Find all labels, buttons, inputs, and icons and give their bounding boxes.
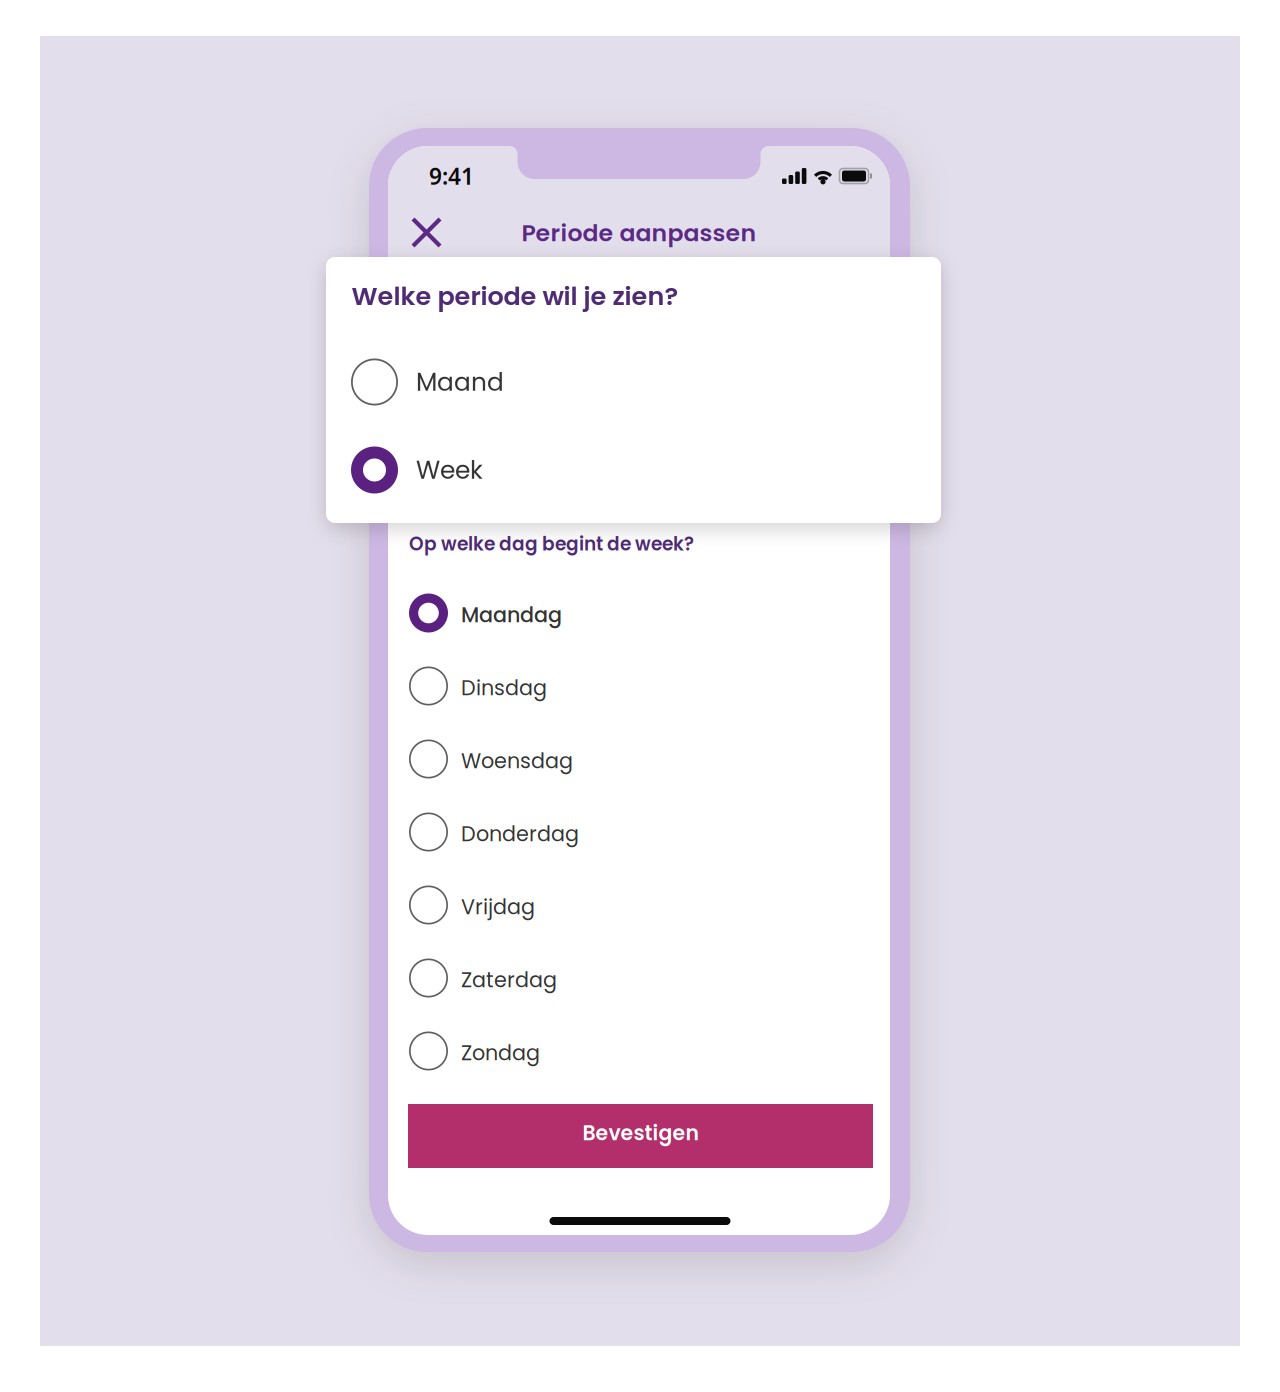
button[interactable]: Sluiten (397, 203, 455, 261)
staticText: Vrijdag (461, 892, 535, 921)
button[interactable]: Woensdag (409, 722, 869, 795)
staticText: 9:41 (429, 161, 474, 191)
staticText: Op welke dag begint de week? (409, 531, 694, 557)
button[interactable]: Bevestigen (408, 1104, 873, 1168)
button[interactable]: Donderdag (409, 795, 869, 868)
staticText: Maandag (461, 600, 562, 629)
staticText: Donderdag (461, 819, 579, 848)
staticText: Zondag (461, 1038, 540, 1067)
staticText: Dinsdag (461, 673, 547, 702)
button[interactable]: Maandag (409, 576, 869, 649)
button[interactable]: Zondag (409, 1014, 869, 1087)
button[interactable]: Maand (351, 338, 916, 426)
button[interactable]: Vrijdag (409, 868, 869, 941)
staticText: Bevestigen (582, 1119, 698, 1147)
button[interactable]: Zaterdag (409, 941, 869, 1014)
staticText: Welke periode wil je zien? (351, 278, 678, 314)
button[interactable]: Week (351, 426, 916, 514)
staticText: Periode aanpassen (521, 216, 756, 249)
staticText: Week (416, 453, 483, 487)
button[interactable]: Dinsdag (409, 649, 869, 722)
staticText: Zaterdag (461, 965, 557, 994)
staticText: Maand (416, 365, 504, 399)
staticText: Woensdag (461, 746, 573, 775)
